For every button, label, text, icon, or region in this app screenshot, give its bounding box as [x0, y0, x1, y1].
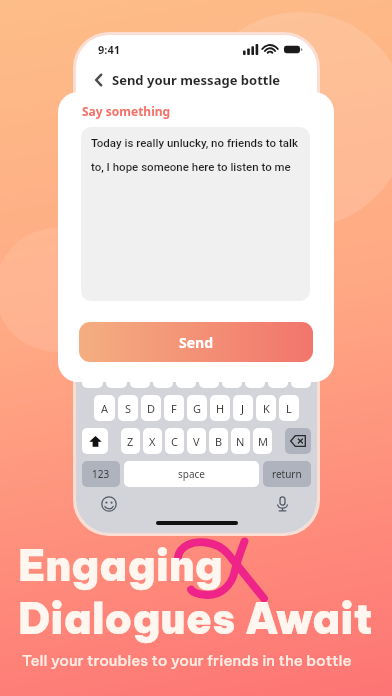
staticText: Today is really unlucky, no friends to t…	[91, 136, 304, 174]
button[interactable]: Back	[88, 69, 110, 91]
staticText: B	[215, 434, 223, 449]
button[interactable]: Emoji	[98, 493, 120, 515]
staticText: return	[272, 467, 302, 481]
button[interactable]: X	[143, 428, 162, 454]
staticText: Send	[179, 333, 214, 352]
button[interactable]: D	[141, 395, 161, 421]
button[interactable]: space	[124, 461, 259, 487]
button[interactable]: C	[165, 428, 184, 454]
button[interactable]: P	[291, 362, 311, 388]
button[interactable]: return	[263, 461, 311, 487]
button[interactable]: G	[187, 395, 207, 421]
staticText: S	[125, 401, 132, 416]
button[interactable]: Send	[79, 322, 313, 362]
button[interactable]: L	[279, 395, 299, 421]
staticText: V	[193, 434, 200, 449]
button[interactable]: T	[176, 362, 196, 388]
button[interactable]: M	[253, 428, 272, 454]
button[interactable]: 123	[82, 461, 120, 487]
staticText: L	[286, 401, 292, 416]
staticText: D	[147, 401, 156, 416]
staticText: Engaging	[18, 539, 223, 592]
button[interactable]: B	[209, 428, 228, 454]
staticText: G	[193, 401, 202, 416]
staticText: F	[171, 401, 177, 416]
staticText: space	[178, 467, 205, 481]
button[interactable]: V	[187, 428, 206, 454]
button[interactable]: R	[153, 362, 173, 388]
staticText: N	[236, 434, 245, 449]
staticText: Z	[127, 434, 134, 449]
staticText: Dialogues Await	[18, 592, 373, 645]
button[interactable]: N	[231, 428, 250, 454]
button[interactable]: E	[130, 362, 150, 388]
staticText: Say something	[82, 103, 171, 119]
staticText: H	[216, 401, 225, 416]
staticText: A	[101, 401, 109, 416]
button[interactable]: W	[106, 362, 127, 388]
button[interactable]: Q	[82, 362, 103, 388]
button[interactable]: Shift	[82, 428, 108, 454]
staticText: 9:41	[98, 42, 120, 57]
button[interactable]: J	[233, 395, 253, 421]
staticText: J	[241, 401, 245, 416]
button[interactable]: Dictation	[271, 493, 293, 515]
button[interactable]: U	[222, 362, 242, 388]
button[interactable]: I	[245, 362, 265, 388]
button[interactable]: H	[210, 395, 230, 421]
button[interactable]: Y	[199, 362, 219, 388]
staticText: Tell your troubles to your friends in th…	[22, 651, 352, 670]
staticText: K	[263, 401, 270, 416]
button[interactable]: A	[94, 395, 115, 421]
button[interactable]: O	[268, 362, 288, 388]
staticText: M	[258, 434, 268, 449]
button[interactable]: F	[164, 395, 184, 421]
staticText: C	[171, 434, 178, 449]
button[interactable]: S	[118, 395, 138, 421]
staticText: X	[149, 434, 156, 449]
button[interactable]: Z	[121, 428, 140, 454]
staticText: 123	[92, 467, 110, 481]
staticText: Send your message bottle	[112, 71, 281, 89]
button[interactable]: K	[256, 395, 276, 421]
button[interactable]: Backspace	[285, 428, 311, 454]
